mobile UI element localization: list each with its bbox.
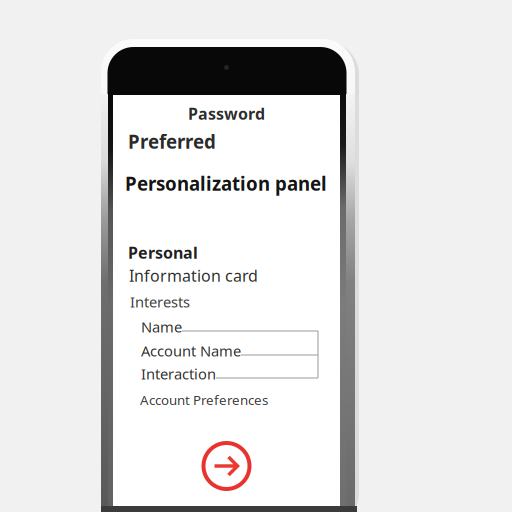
staticText: Password (188, 103, 265, 124)
staticText: Interests (130, 292, 190, 311)
staticText: Preferred (128, 129, 216, 154)
staticText: Personal (128, 242, 198, 263)
staticText: Interaction (141, 364, 216, 383)
staticText: Account Name (141, 341, 241, 360)
staticText: Personalization panel (125, 171, 327, 196)
staticText: Name (141, 317, 182, 336)
staticText: Account Preferences (140, 391, 268, 409)
staticText: Information card (129, 265, 258, 286)
button[interactable]: Continue (201, 441, 251, 491)
